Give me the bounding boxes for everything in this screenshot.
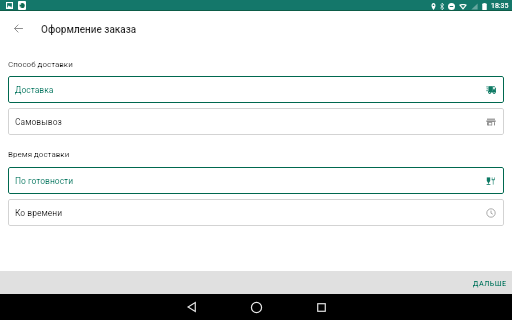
button[interactable]: Домой xyxy=(245,296,267,318)
button[interactable]: По готовности xyxy=(8,167,504,194)
button[interactable]: Назад xyxy=(178,296,204,318)
button[interactable]: Назад xyxy=(8,18,28,38)
staticText: 18:35 xyxy=(491,2,509,10)
button[interactable]: ДАЛЬШЕ xyxy=(469,275,511,291)
button[interactable]: Доставка xyxy=(8,76,504,103)
button[interactable]: Ко времени xyxy=(8,199,504,226)
staticText: Доставка xyxy=(15,85,54,95)
staticText: Оформление заказа xyxy=(41,24,137,36)
staticText: Время доставки xyxy=(8,150,70,159)
staticText: Ко времени xyxy=(15,208,63,218)
button[interactable]: Обзор xyxy=(308,296,334,318)
staticText: Способ доставки xyxy=(8,60,73,69)
staticText: ДАЛЬШЕ xyxy=(473,279,507,287)
staticText: По готовности xyxy=(15,176,74,186)
staticText: Самовывоз xyxy=(15,117,62,127)
button[interactable]: Самовывоз xyxy=(8,108,504,135)
